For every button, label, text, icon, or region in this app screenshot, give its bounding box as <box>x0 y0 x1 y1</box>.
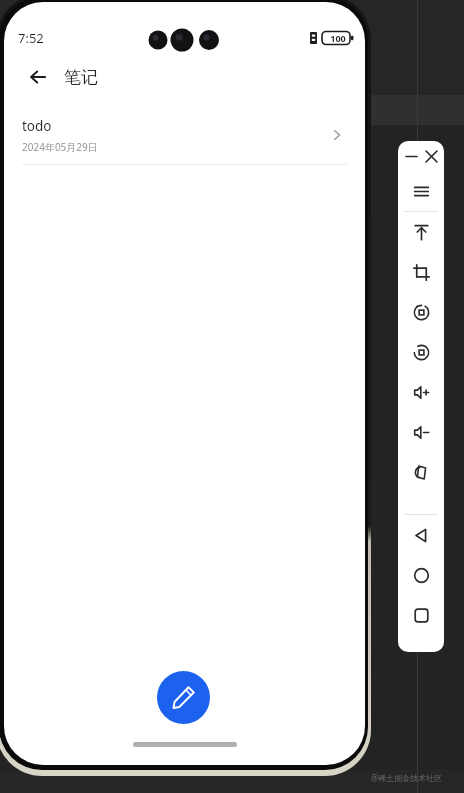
staticText: todo <box>22 117 52 135</box>
button[interactable]: Back <box>22 60 56 94</box>
button[interactable]: Minimize <box>401 146 421 166</box>
button[interactable]: Volume down <box>398 412 444 452</box>
button[interactable]: Screenshot <box>398 332 444 372</box>
button[interactable]: Close <box>421 146 441 166</box>
button[interactable]: Volume up <box>398 372 444 412</box>
button[interactable]: New note <box>157 671 210 724</box>
staticText: 2024年05月29日 <box>22 140 98 154</box>
button[interactable]: Menu <box>398 171 444 211</box>
button[interactable]: Record <box>398 292 444 332</box>
button[interactable]: Upload <box>398 212 444 252</box>
staticText: 7:52 <box>18 29 44 47</box>
button[interactable]: Recents <box>398 595 444 635</box>
button[interactable]: Rotate <box>398 452 444 492</box>
staticText: 笔记 <box>64 67 98 88</box>
button[interactable]: todo <box>4 106 365 164</box>
staticText: @稀土掘金技术社区 <box>371 772 443 783</box>
button[interactable]: Crop <box>398 252 444 292</box>
button[interactable]: Back <box>398 515 444 555</box>
staticText: 100 <box>324 32 352 44</box>
button[interactable]: Home <box>398 555 444 595</box>
